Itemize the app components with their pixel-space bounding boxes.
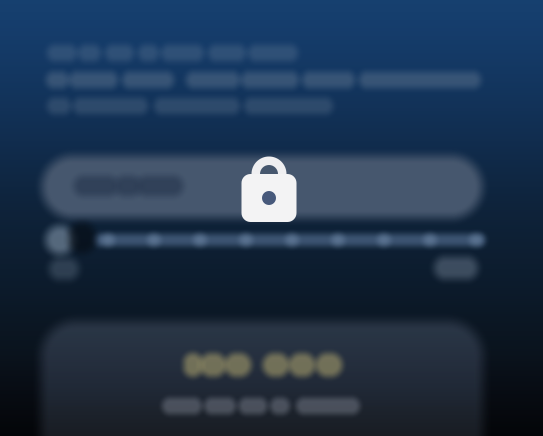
button[interactable]: Content hidden, unlock to view bbox=[241, 151, 297, 223]
